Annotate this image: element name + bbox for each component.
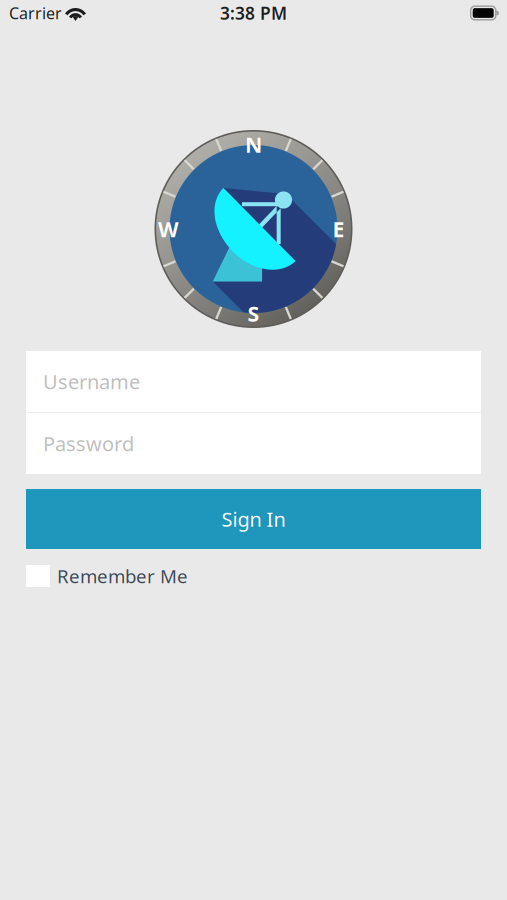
staticText: Remember Me bbox=[57, 564, 188, 588]
staticText: E bbox=[332, 215, 344, 243]
button[interactable]: Sign In bbox=[26, 489, 481, 549]
button[interactable]: Remember Me bbox=[0, 561, 507, 591]
staticText: N bbox=[245, 130, 262, 159]
button[interactable]: Username bbox=[26, 351, 481, 412]
staticText: W bbox=[158, 215, 179, 243]
button[interactable]: Password bbox=[26, 413, 481, 474]
staticText: Sign In bbox=[221, 506, 285, 532]
staticText: S bbox=[247, 299, 259, 328]
staticText: Carrier bbox=[9, 2, 62, 24]
staticText: 3:38 PM bbox=[220, 1, 287, 24]
staticText: Username bbox=[43, 368, 140, 395]
staticText: Password bbox=[43, 430, 134, 457]
